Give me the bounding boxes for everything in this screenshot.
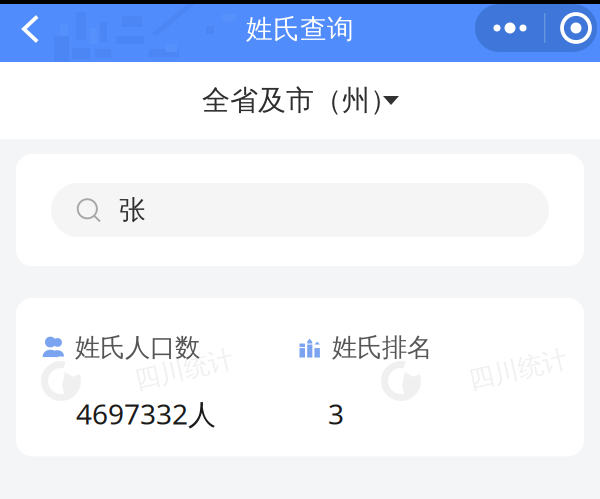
staticText: 四川统计 bbox=[468, 354, 568, 385]
staticText: 姓氏排名 bbox=[332, 332, 432, 363]
button[interactable]: Back bbox=[0, 0, 80, 58]
staticText: 4697332人 bbox=[76, 395, 216, 432]
staticText: 全省及市（州） bbox=[202, 83, 398, 118]
staticText: 姓氏查询 bbox=[246, 13, 354, 45]
staticText: 张 bbox=[119, 194, 146, 226]
staticText: 姓氏人口数 bbox=[75, 332, 200, 363]
button[interactable]: More bbox=[475, 4, 597, 52]
button[interactable]: 全省及市（州） bbox=[0, 62, 600, 139]
staticText: 3 bbox=[328, 395, 344, 432]
staticText: 四川统计 bbox=[134, 354, 234, 385]
